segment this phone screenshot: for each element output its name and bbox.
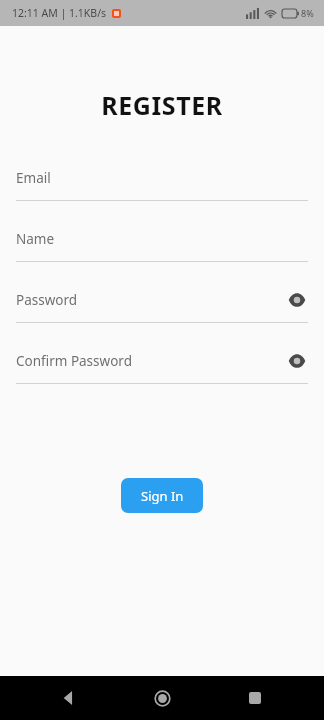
staticText: 8%	[301, 7, 314, 19]
button[interactable]: Confirm Password	[16, 350, 308, 372]
button[interactable]: Toggle password visibility	[286, 289, 308, 311]
staticText: Name	[16, 230, 55, 248]
button[interactable]: Back	[45, 676, 93, 720]
button[interactable]: Password	[16, 289, 308, 311]
staticText: Password	[16, 291, 78, 309]
button[interactable]: Home	[138, 676, 186, 720]
button[interactable]: Toggle password visibility	[286, 350, 308, 372]
staticText: Email	[16, 169, 51, 187]
button[interactable]: Name	[16, 228, 308, 250]
staticText: 12:11 AM | 1.1KB/s	[12, 6, 107, 20]
staticText: Confirm Password	[16, 352, 132, 370]
button[interactable]: Recent apps	[231, 676, 279, 720]
button[interactable]: Email	[16, 167, 308, 189]
staticText: Sign In	[141, 487, 184, 505]
button[interactable]: Sign In	[121, 478, 203, 513]
staticText: REGISTER	[101, 88, 223, 122]
